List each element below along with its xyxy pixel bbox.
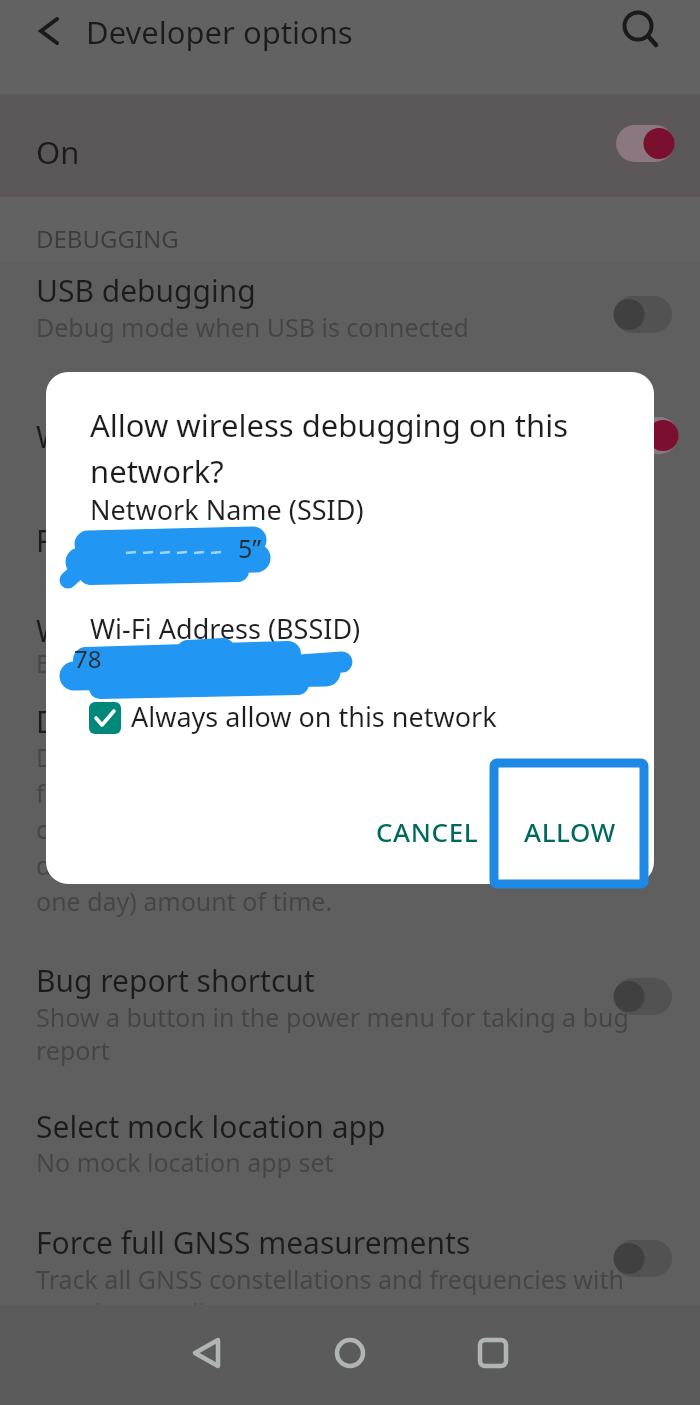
button[interactable] [620,8,662,50]
staticText: CANCEL [376,814,479,849]
button[interactable] [512,798,628,858]
staticText: DEBUGGING [36,222,179,255]
button[interactable] [334,1337,366,1369]
staticText: Force full GNSS measurements [36,1222,471,1263]
staticText: Track all GNSS constellations and freque… [36,1262,624,1296]
button[interactable] [0,262,700,357]
staticText: USB debugging [36,270,256,311]
staticText: Wi-Fi Address (BSSID) [90,610,361,647]
staticText: Disable adb authorization timeout [36,701,518,742]
staticText: Always allow on this network [131,698,497,735]
button[interactable] [0,1090,700,1195]
button[interactable] [0,1205,700,1305]
staticText: Wireless debugging [36,416,316,457]
button[interactable] [614,296,672,333]
staticText: Enable wireless display options [36,646,401,680]
staticText: Developer options [86,11,353,53]
staticText: Select mock location app [36,1106,386,1147]
staticText: current timeout default setting limit va… [36,812,527,846]
staticText: 78 [74,642,102,675]
staticText: report [36,1033,110,1067]
staticText: 5” [238,531,262,565]
staticText: network? [90,450,224,492]
button[interactable] [614,978,672,1015]
button[interactable] [477,1337,509,1369]
button[interactable] [0,94,700,197]
button[interactable] [0,948,700,1078]
staticText: Network Name (SSID) [90,491,364,528]
staticText: Debug mode when USB is connected [36,310,469,344]
button[interactable] [356,798,496,858]
staticText: Show a button in the power menu for taki… [36,1000,629,1034]
staticText: No mock location app set [36,1145,334,1179]
button[interactable] [620,417,678,454]
staticText: Revoke USB debugging authorisations [36,520,577,561]
button[interactable] [614,1240,672,1277]
staticText: default one day grace period of [36,848,405,882]
staticText: Bug report shortcut [36,960,315,1001]
staticText: Wireless display certification [36,610,436,651]
button[interactable] [190,1337,224,1371]
staticText: one day) amount of time. [36,884,333,918]
button[interactable] [616,125,674,162]
staticText: Disable automatic revocation of adb auth… [36,740,636,774]
staticText: for systems that have not reconnected wi… [36,776,567,810]
button[interactable] [36,16,62,46]
staticText: Allow wireless debugging on this [90,404,568,446]
staticText: On [36,131,80,173]
button[interactable] [89,702,121,734]
staticText: ALLOW [524,814,616,849]
